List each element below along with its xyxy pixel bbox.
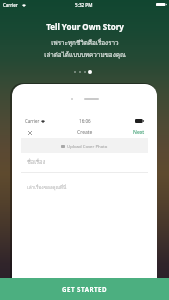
staticText: Next — [133, 129, 145, 135]
staticText: Upload Cover Photo — [67, 143, 108, 149]
staticText: เพราะทุกชีวิตคือเรื่องราว — [51, 38, 119, 48]
staticText: Carrier — [3, 2, 18, 8]
staticText: GET STARTED — [62, 285, 108, 293]
staticText: เล่าต่อได้แบบบทความของคุณ — [44, 50, 126, 60]
staticText: Carrier — [25, 118, 40, 124]
button[interactable]: Close — [25, 128, 34, 137]
staticText: ชื่อเรื่อง — [27, 158, 46, 167]
button[interactable]: Upload Cover Photo — [21, 138, 148, 153]
staticText: 16:06 — [79, 118, 91, 124]
staticText: Create — [77, 129, 93, 136]
staticText: เล่าเรื่องของคุณที่นี่ — [27, 183, 67, 191]
staticText: Tell Your Own Story — [46, 21, 124, 32]
staticText: 5:32 PM — [75, 2, 93, 8]
button[interactable]: GET STARTED — [0, 278, 169, 300]
button[interactable]: Next — [131, 127, 147, 137]
